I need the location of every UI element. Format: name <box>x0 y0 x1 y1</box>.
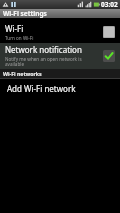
staticText: Add Wi-Fi network <box>7 83 76 94</box>
button[interactable]: Checked <box>103 50 115 62</box>
staticText: Wi-Fi settings <box>3 9 47 18</box>
staticText: 03:02 <box>101 0 118 9</box>
button[interactable]: Network notification <box>0 43 120 69</box>
staticText: Notify me when an open network is availa… <box>5 56 82 68</box>
staticText: Network notification <box>5 44 82 55</box>
button[interactable]: Add Wi-Fi network <box>0 79 120 97</box>
staticText: Wi-Fi <box>5 23 24 34</box>
button[interactable]: Unchecked <box>103 26 115 38</box>
button[interactable]: Wi-Fi <box>0 20 120 43</box>
staticText: Wi-Fi networks <box>3 70 42 77</box>
staticText: Turn on Wi-Fi <box>5 35 34 41</box>
